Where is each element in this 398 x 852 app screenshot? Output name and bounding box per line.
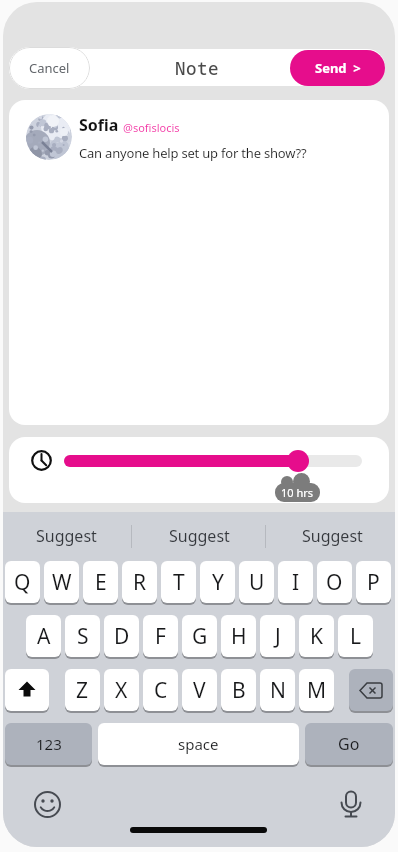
button[interactable]: Suggest — [277, 522, 387, 550]
button[interactable]: Q — [5, 561, 40, 603]
button[interactable]: M — [299, 669, 334, 711]
button[interactable]: space — [98, 723, 299, 765]
staticText: Suggest — [169, 525, 230, 547]
staticText: F — [155, 622, 166, 651]
staticText: Z — [76, 676, 89, 705]
staticText: U — [249, 568, 265, 597]
staticText: T — [173, 568, 185, 597]
button[interactable]: G — [182, 615, 217, 657]
button[interactable]: H — [221, 615, 256, 657]
button[interactable]: Cancel — [9, 47, 90, 89]
staticText: G — [192, 622, 208, 651]
button[interactable] — [338, 790, 364, 820]
button[interactable]: Suggest — [11, 522, 121, 550]
button[interactable] — [349, 669, 393, 711]
button[interactable]: 123 — [5, 723, 92, 765]
staticText: J — [275, 622, 281, 651]
staticText: H — [231, 622, 247, 651]
staticText: A — [37, 622, 51, 651]
button[interactable]: F — [143, 615, 178, 657]
staticText: I — [292, 568, 300, 597]
staticText: Suggest — [302, 525, 363, 547]
button[interactable]: Suggest — [144, 522, 254, 550]
staticText: Q — [14, 568, 31, 597]
button[interactable]: K — [299, 615, 334, 657]
staticText: Suggest — [36, 525, 97, 547]
staticText: P — [367, 568, 380, 597]
button[interactable] — [5, 669, 49, 711]
button[interactable]: E — [83, 561, 118, 603]
staticText: V — [193, 676, 206, 705]
staticText: L — [350, 622, 362, 651]
button[interactable]: O — [317, 561, 352, 603]
button[interactable]: J — [260, 615, 295, 657]
button[interactable]: R — [122, 561, 157, 603]
staticText: D — [114, 622, 130, 651]
staticText: O — [326, 568, 343, 597]
staticText: 123 — [36, 734, 62, 754]
button[interactable]: L — [338, 615, 373, 657]
staticText: Sofia — [79, 114, 119, 136]
staticText: @sofislocis — [123, 120, 180, 135]
button[interactable]: Send > — [290, 50, 385, 86]
staticText: W — [52, 568, 72, 597]
button[interactable]: Go — [305, 723, 393, 765]
staticText: Go — [338, 733, 360, 755]
staticText: 10 hrs — [281, 485, 314, 500]
staticText: M — [307, 676, 327, 705]
staticText: R — [133, 568, 147, 597]
button[interactable]: P — [356, 561, 391, 603]
staticText: space — [178, 734, 219, 754]
button[interactable]: C — [143, 669, 178, 711]
staticText: N — [270, 676, 286, 705]
button[interactable] — [33, 790, 62, 819]
button[interactable]: N — [260, 669, 295, 711]
staticText: Cancel — [29, 59, 70, 77]
staticText: S — [77, 622, 89, 651]
staticText: K — [310, 622, 323, 651]
button[interactable]: X — [104, 669, 139, 711]
button[interactable]: Z — [65, 669, 100, 711]
button[interactable]: Y — [200, 561, 235, 603]
button[interactable]: I — [278, 561, 313, 603]
staticText: C — [154, 676, 168, 705]
staticText: E — [95, 568, 107, 597]
staticText: Can anyone help set up for the show?? — [79, 144, 307, 162]
button[interactable]: A — [26, 615, 61, 657]
button[interactable]: S — [65, 615, 100, 657]
staticText: Y — [212, 568, 224, 597]
button[interactable]: T — [161, 561, 196, 603]
button[interactable]: D — [104, 615, 139, 657]
staticText: B — [232, 676, 246, 705]
button[interactable]: U — [239, 561, 274, 603]
staticText: X — [115, 676, 128, 705]
button[interactable] — [64, 455, 301, 467]
button[interactable]: W — [44, 561, 79, 603]
button[interactable]: V — [182, 669, 217, 711]
staticText: Send > — [315, 59, 361, 77]
staticText: Note — [175, 56, 219, 80]
button[interactable]: B — [221, 669, 256, 711]
